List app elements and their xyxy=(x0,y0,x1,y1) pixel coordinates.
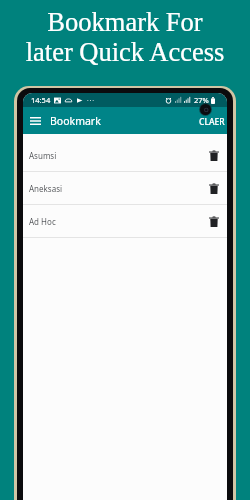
staticText: CLAER xyxy=(199,116,225,128)
staticText: Ad Hoc xyxy=(29,216,206,227)
button[interactable]: Ad Hoc xyxy=(23,205,227,237)
staticText: later Quick Access xyxy=(0,37,250,66)
button[interactable]: Aneksasi xyxy=(23,172,227,204)
staticText: 14:54 xyxy=(31,95,51,105)
staticText: Aneksasi xyxy=(29,183,206,194)
staticText: Asumsi xyxy=(29,150,206,161)
button[interactable]: Delete Asumsi xyxy=(206,147,222,163)
button[interactable]: Asumsi xyxy=(23,139,227,171)
staticText: 27% xyxy=(194,95,209,105)
button[interactable]: CLAER xyxy=(195,110,227,132)
button[interactable]: Delete Ad Hoc xyxy=(206,213,222,229)
button[interactable]: Delete Aneksasi xyxy=(206,180,222,196)
staticText: Bookmark For xyxy=(0,7,250,36)
staticText: Bookmark xyxy=(50,114,101,128)
button[interactable]: Open navigation menu xyxy=(24,110,46,132)
